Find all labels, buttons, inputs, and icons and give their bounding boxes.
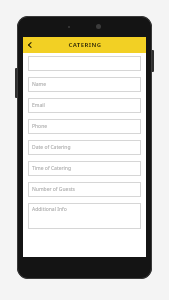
staticText: Additional Info — [32, 206, 67, 213]
staticText: CATERING — [68, 41, 102, 49]
button[interactable]: Name — [28, 77, 141, 92]
button[interactable]: Back — [23, 37, 37, 53]
staticText: Phone — [32, 123, 48, 130]
staticText: Date of Catering — [32, 144, 71, 151]
button[interactable]: Date of Catering — [28, 140, 141, 155]
button[interactable] — [28, 56, 141, 71]
staticText: Name — [32, 81, 47, 88]
button[interactable]: Email — [28, 98, 141, 113]
staticText: Email — [32, 102, 45, 109]
button[interactable]: Additional Info — [28, 203, 141, 229]
button[interactable]: Time of Catering — [28, 161, 141, 176]
button[interactable]: Phone — [28, 119, 141, 134]
staticText: Number of Guests — [32, 186, 76, 193]
button[interactable]: Number of Guests — [28, 182, 141, 197]
staticText: Time of Catering — [32, 165, 72, 172]
